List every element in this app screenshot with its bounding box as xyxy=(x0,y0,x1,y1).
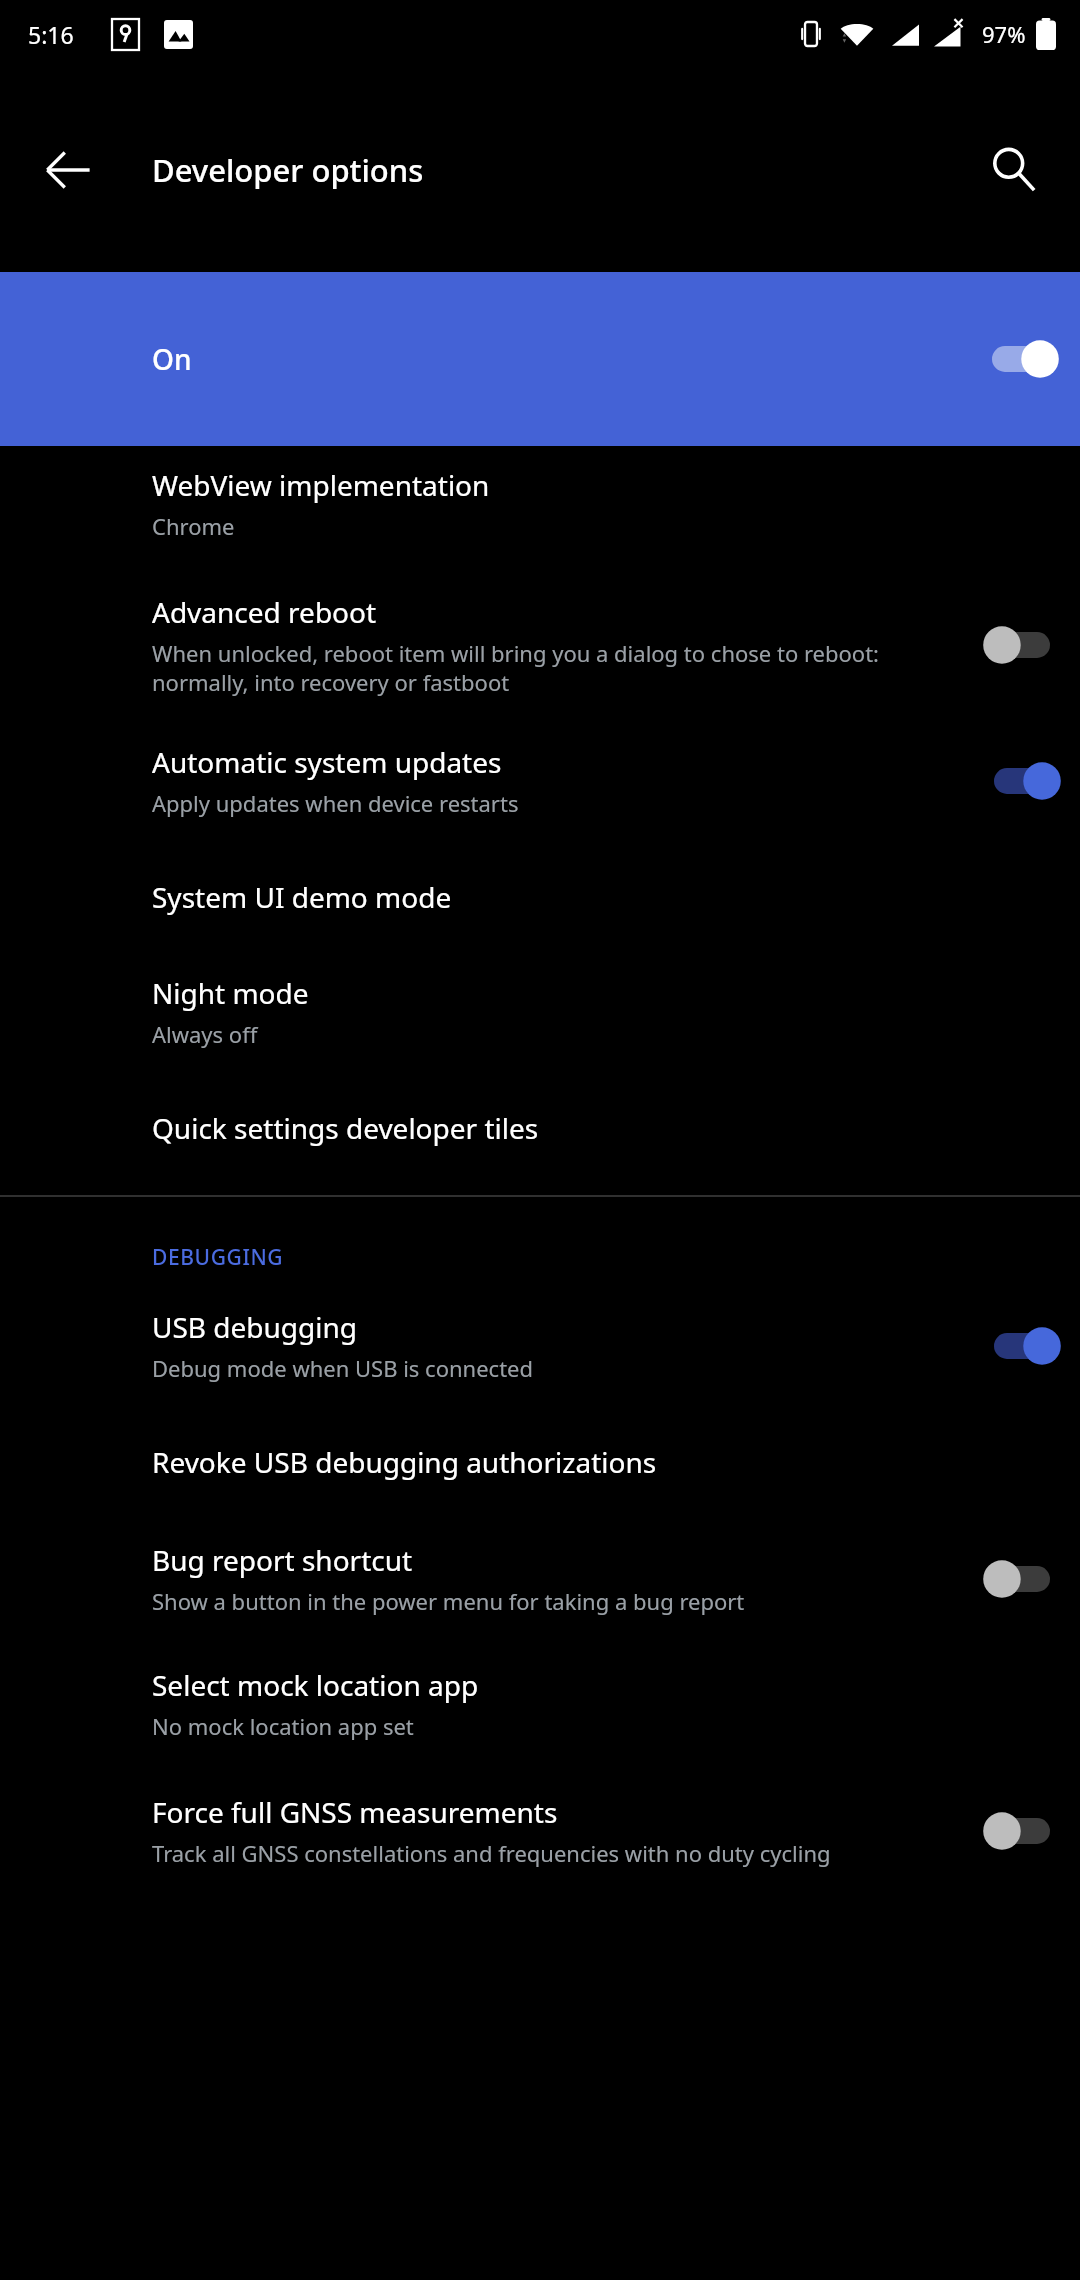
staticText: Bug report shortcut xyxy=(152,1541,413,1579)
staticText: Night mode xyxy=(152,974,309,1012)
staticText: No mock location app set xyxy=(152,1711,414,1741)
button[interactable]: Advanced reboot xyxy=(0,565,1080,719)
button[interactable]: Force full GNSS measurements xyxy=(0,1767,1080,1894)
staticText: Revoke USB debugging authorizations xyxy=(152,1443,657,1481)
button[interactable]: Bug report shortcut xyxy=(0,1517,1080,1640)
button[interactable]: USB debugging xyxy=(0,1280,1080,1407)
staticText: 97% xyxy=(982,19,1026,49)
staticText: 5:16 xyxy=(28,19,74,50)
button[interactable]: Select mock location app xyxy=(0,1640,1080,1767)
button[interactable]: Search xyxy=(966,122,1062,218)
staticText: Apply updates when device restarts xyxy=(152,788,519,818)
button[interactable]: Revoke USB debugging authorizations xyxy=(0,1407,1080,1517)
button[interactable]: WebView implementation xyxy=(0,446,1080,565)
staticText: Automatic system updates xyxy=(152,743,502,781)
staticText: On xyxy=(152,340,192,378)
staticText: Always off xyxy=(152,1019,258,1049)
staticText: Quick settings developer tiles xyxy=(152,1109,539,1147)
staticText: Chrome xyxy=(152,511,235,541)
staticText: DEBUGGING xyxy=(152,1243,284,1272)
button[interactable]: Automatic system updates xyxy=(0,719,1080,842)
button[interactable]: Back xyxy=(20,122,116,218)
staticText: Developer options xyxy=(152,149,424,191)
button[interactable]: System UI demo mode xyxy=(0,842,1080,952)
staticText: WebView implementation xyxy=(152,466,490,504)
staticText: System UI demo mode xyxy=(152,878,452,916)
staticText: When unlocked, reboot item will bring yo… xyxy=(152,638,972,697)
staticText: USB debugging xyxy=(152,1308,358,1346)
button[interactable]: Quick settings developer tiles xyxy=(0,1075,1080,1185)
staticText: Advanced reboot xyxy=(152,593,377,631)
staticText: Select mock location app xyxy=(152,1666,479,1704)
staticText: Show a button in the power menu for taki… xyxy=(152,1586,745,1616)
button[interactable]: On xyxy=(0,272,1080,446)
staticText: Track all GNSS constellations and freque… xyxy=(152,1838,831,1868)
staticText: Debug mode when USB is connected xyxy=(152,1353,534,1383)
button[interactable]: Night mode xyxy=(0,952,1080,1075)
staticText: Force full GNSS measurements xyxy=(152,1793,558,1831)
